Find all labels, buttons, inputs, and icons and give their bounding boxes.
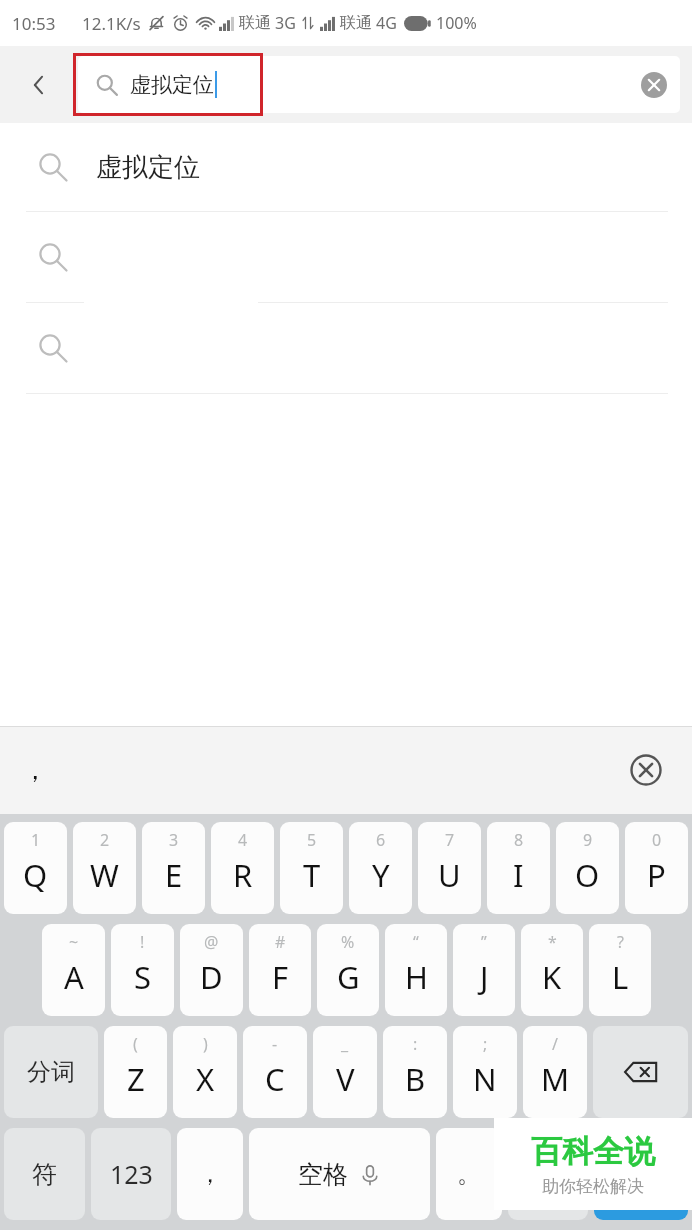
staticText: A (64, 956, 84, 998)
staticText: ， (22, 754, 48, 787)
staticText: 7 (445, 829, 455, 851)
button[interactable]: Back (0, 46, 78, 123)
staticText: W (90, 854, 119, 896)
staticText: 3 (169, 829, 179, 851)
staticText: 6 (376, 829, 386, 851)
button[interactable]: 5 (280, 822, 343, 914)
button[interactable] (0, 212, 692, 303)
staticText: D (200, 956, 223, 998)
staticText: U (438, 854, 461, 896)
staticText: V (336, 1058, 355, 1100)
button[interactable]: ， (177, 1128, 243, 1220)
button[interactable]: 虚拟定位 (0, 123, 692, 212)
button[interactable]: # (249, 924, 311, 1016)
button[interactable]: 7 (418, 822, 481, 914)
button[interactable]: ? (589, 924, 651, 1016)
staticText: H (405, 956, 428, 998)
staticText: T (303, 854, 321, 896)
button[interactable]: 1 (4, 822, 67, 914)
staticText: C (265, 1058, 285, 1100)
button[interactable]: Enter (594, 1128, 688, 1220)
button[interactable]: 符 (4, 1128, 85, 1220)
button[interactable]: 4 (211, 822, 274, 914)
button[interactable]: - (243, 1026, 307, 1118)
staticText: 联通 (340, 13, 372, 33)
button[interactable]: ~ (42, 924, 105, 1016)
staticText: I (513, 854, 524, 896)
button[interactable]: 。 (436, 1128, 502, 1220)
button[interactable]: 8 (487, 822, 550, 914)
staticText: G (337, 956, 360, 998)
staticText: # (275, 931, 286, 953)
staticText: 4 (238, 829, 248, 851)
staticText: E (165, 854, 183, 896)
button[interactable]: 2 (73, 822, 136, 914)
button[interactable]: Hide keyboard (624, 748, 668, 792)
staticText: 3G (275, 12, 296, 34)
staticText: @ (204, 931, 219, 953)
button[interactable]: _ (313, 1026, 377, 1118)
button[interactable]: 3 (142, 822, 205, 914)
button[interactable]: : (383, 1026, 447, 1118)
staticText: * (548, 931, 557, 953)
staticText: 助你轻松解决 (542, 1176, 644, 1197)
button[interactable]: @ (180, 924, 243, 1016)
staticText: 分词 (27, 1057, 75, 1087)
staticText: N (473, 1058, 497, 1100)
button[interactable]: 6 (349, 822, 412, 914)
button[interactable]: 9 (556, 822, 619, 914)
staticText: L (612, 956, 629, 998)
button[interactable]: “ (385, 924, 447, 1016)
staticText: 1 (31, 829, 41, 851)
button[interactable]: 空格 (249, 1128, 430, 1220)
staticText: J (480, 956, 489, 998)
staticText: 100% (436, 12, 477, 34)
button[interactable]: 分词 (4, 1026, 98, 1118)
staticText: 4G (376, 12, 397, 34)
staticText: R (233, 854, 253, 896)
staticText: 123 (110, 1157, 153, 1191)
staticText: : (413, 1033, 418, 1055)
staticText: 12.1K/s (82, 12, 141, 35)
staticText: 9 (583, 829, 593, 851)
staticText: ! (140, 931, 145, 953)
staticText: ~ (69, 931, 79, 953)
staticText: _ (341, 1033, 349, 1055)
button[interactable]: % (317, 924, 379, 1016)
staticText: ” (481, 931, 487, 953)
staticText: ( (133, 1033, 138, 1055)
staticText: B (405, 1058, 426, 1100)
button[interactable]: ” (453, 924, 515, 1016)
staticText: / (552, 1033, 558, 1055)
button[interactable]: / (523, 1026, 587, 1118)
staticText: O (575, 854, 600, 896)
button[interactable] (508, 1128, 588, 1220)
staticText: “ (413, 931, 419, 953)
staticText: M (541, 1058, 570, 1100)
button[interactable]: Backspace (593, 1026, 688, 1118)
staticText: S (134, 956, 152, 998)
button[interactable]: ; (453, 1026, 517, 1118)
staticText: 8 (514, 829, 524, 851)
staticText: K (542, 956, 562, 998)
staticText: F (272, 956, 289, 998)
staticText: - (272, 1033, 278, 1055)
staticText: ， (198, 1159, 222, 1189)
button[interactable]: ! (111, 924, 174, 1016)
staticText: 0 (652, 829, 662, 851)
button[interactable]: ) (173, 1026, 237, 1118)
button[interactable]: ( (104, 1026, 167, 1118)
button[interactable]: 123 (91, 1128, 171, 1220)
staticText: 虚拟定位 (96, 151, 200, 184)
staticText: X (196, 1058, 215, 1100)
staticText: P (647, 854, 666, 896)
button[interactable]: 虚拟定位 (78, 56, 680, 113)
staticText: ? (617, 931, 624, 953)
staticText: 符 (32, 1159, 57, 1190)
staticText: 2 (100, 829, 110, 851)
button[interactable]: 0 (625, 822, 688, 914)
staticText: 10:53 (12, 12, 56, 35)
button[interactable]: Clear text (638, 69, 670, 101)
button[interactable]: * (521, 924, 583, 1016)
button[interactable] (0, 303, 692, 394)
